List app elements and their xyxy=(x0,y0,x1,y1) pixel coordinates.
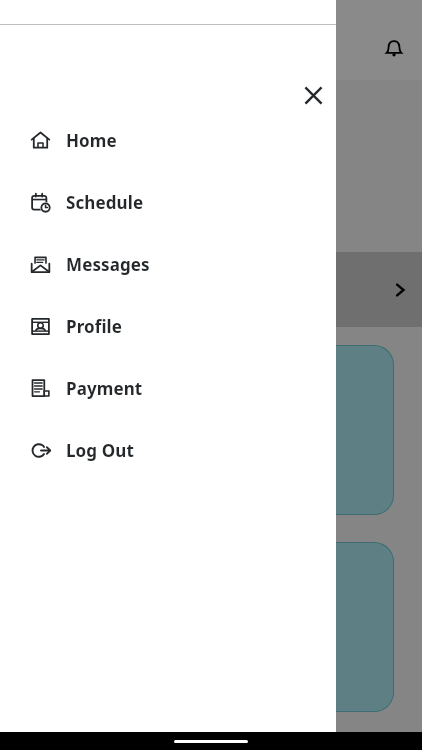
staticText: Home xyxy=(66,129,117,152)
staticText: Log Out xyxy=(66,439,134,462)
staticText: Schedule xyxy=(66,191,144,214)
button[interactable]: Payment xyxy=(0,357,336,419)
button[interactable]: Close menu xyxy=(292,74,334,116)
button[interactable]: Appointment Schedules xyxy=(196,345,394,515)
staticText: Profile xyxy=(66,315,123,338)
other: Next xyxy=(384,274,416,306)
button[interactable]: Next xyxy=(0,252,422,327)
button[interactable]: Log Out xyxy=(0,419,336,481)
button[interactable]: Profile xyxy=(0,295,336,357)
button[interactable]: Schedule xyxy=(0,171,336,233)
button[interactable]: Recent Payment xyxy=(196,542,394,712)
staticText: Messages xyxy=(66,253,150,276)
button[interactable]: Messages xyxy=(0,233,336,295)
button[interactable]: Notifications xyxy=(374,28,414,68)
staticText: Payment xyxy=(66,377,143,400)
button[interactable]: Home xyxy=(0,109,336,171)
